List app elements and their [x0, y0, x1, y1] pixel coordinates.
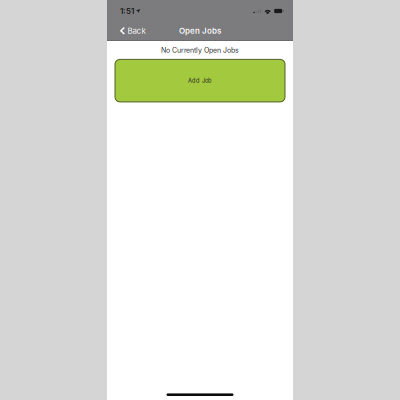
staticText: 1:51 [120, 6, 134, 16]
staticText: No Currently Open Jobs [161, 46, 239, 54]
button[interactable]: Add Job [115, 59, 285, 102]
staticText: Add Job [188, 77, 212, 84]
staticText: Open Jobs [179, 26, 221, 36]
button[interactable]: Back [107, 21, 152, 40]
staticText: Back [128, 26, 146, 36]
